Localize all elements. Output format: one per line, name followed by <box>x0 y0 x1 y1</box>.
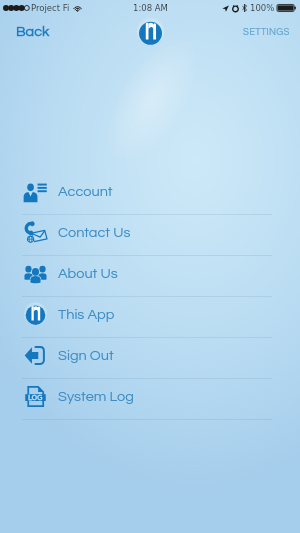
button[interactable]: This App <box>0 297 300 337</box>
staticText: Project Fi <box>31 3 70 13</box>
staticText: Sign Out <box>58 348 114 363</box>
button[interactable]: About Us <box>0 256 300 296</box>
button[interactable]: Back <box>0 18 62 45</box>
button[interactable]: LOG <box>0 379 300 419</box>
button[interactable]: Contact Us <box>0 215 300 255</box>
button[interactable]: SETTINGS <box>231 21 300 43</box>
button[interactable]: Account <box>0 174 300 214</box>
button[interactable]: Sign Out <box>0 338 300 378</box>
staticText: Back <box>16 24 50 39</box>
staticText: Account <box>58 184 113 199</box>
staticText: 1:08 AM <box>133 3 168 13</box>
staticText: LOG <box>28 393 43 401</box>
staticText: About Us <box>58 266 118 281</box>
staticText: 100% <box>250 3 275 13</box>
staticText: System Log <box>58 389 134 404</box>
staticText: SETTINGS <box>243 27 290 37</box>
staticText: This App <box>58 307 115 322</box>
staticText: Contact Us <box>58 225 131 240</box>
